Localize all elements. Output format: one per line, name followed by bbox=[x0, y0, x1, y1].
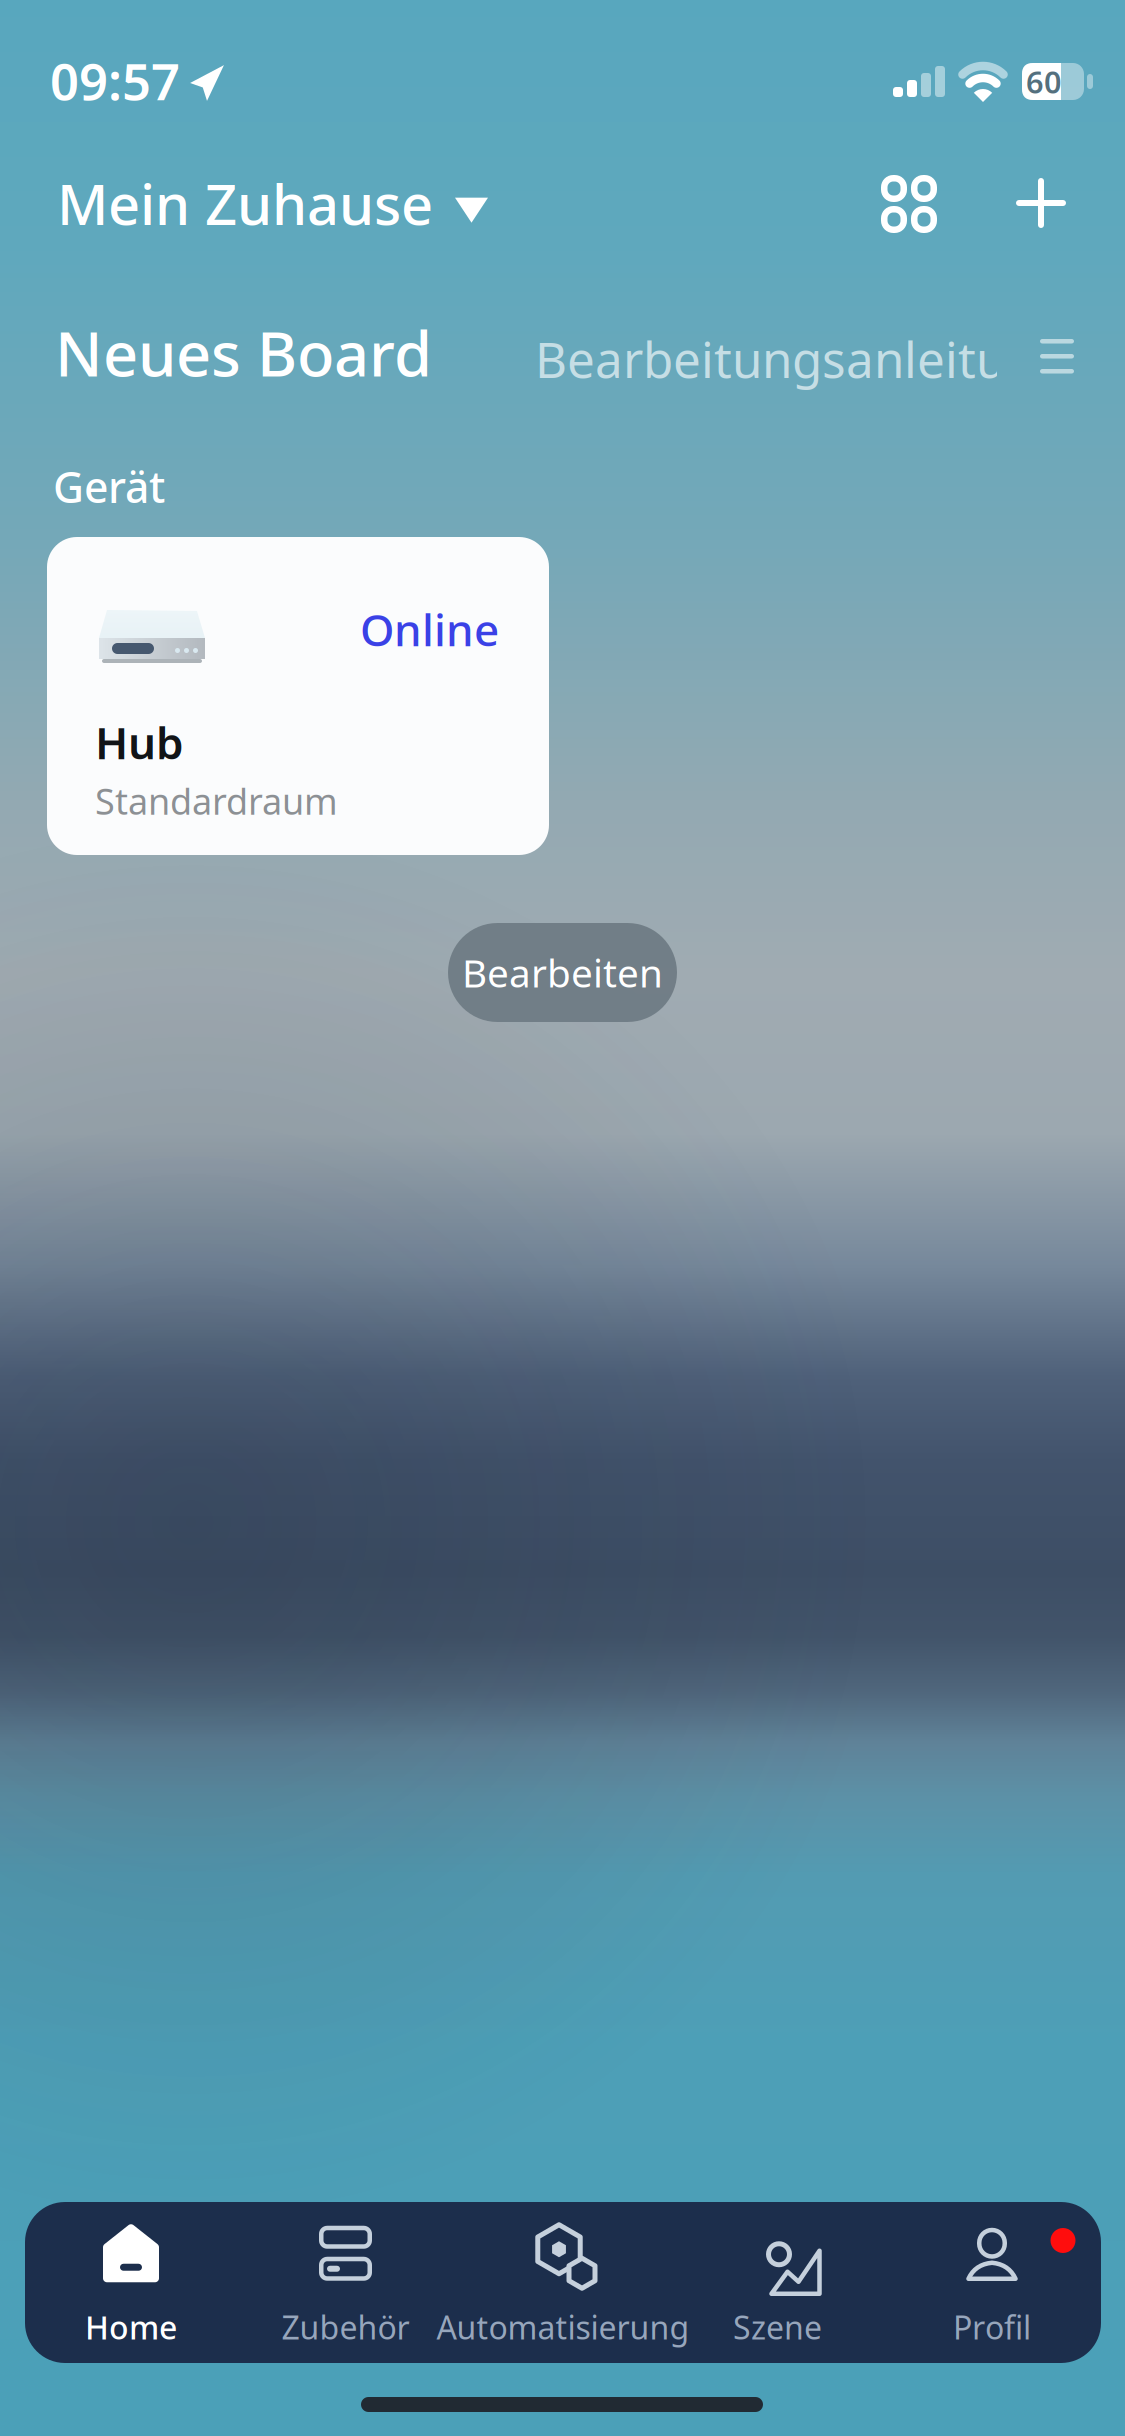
staticText: Online bbox=[360, 600, 499, 658]
button[interactable]: Zubehör bbox=[281, 2225, 409, 2348]
button[interactable]: Mein Zuhause bbox=[57, 166, 488, 240]
staticText: Szene bbox=[733, 2306, 822, 2348]
button[interactable]: Home bbox=[85, 2225, 177, 2348]
button[interactable] bbox=[881, 175, 937, 233]
button[interactable] bbox=[1016, 178, 1066, 228]
button[interactable]: Automatisierung bbox=[436, 2225, 689, 2348]
staticText: Neues Board bbox=[55, 312, 432, 393]
button[interactable] bbox=[1040, 339, 1074, 373]
staticText: Zubehör bbox=[281, 2306, 409, 2348]
button[interactable]: Bearbeitungsanleitung bbox=[535, 326, 997, 391]
button[interactable]: Bearbeiten bbox=[448, 923, 677, 1022]
button[interactable]: Szene bbox=[733, 2225, 822, 2348]
staticText: 60 bbox=[1026, 61, 1062, 102]
staticText: 09:57 bbox=[50, 47, 180, 114]
staticText: Gerät bbox=[53, 458, 165, 515]
staticText: Home bbox=[85, 2306, 177, 2348]
staticText: Mein Zuhause bbox=[57, 166, 433, 240]
button[interactable]: Profil bbox=[953, 2225, 1031, 2348]
staticText: Standardraum bbox=[95, 777, 338, 825]
staticText: Profil bbox=[953, 2306, 1031, 2348]
staticText: Bearbeitungsanleitung bbox=[535, 326, 1066, 391]
button[interactable]: Online bbox=[47, 537, 549, 855]
staticText: Automatisierung bbox=[436, 2306, 689, 2348]
staticText: Bearbeiten bbox=[462, 947, 663, 998]
staticText: Hub bbox=[95, 713, 184, 771]
